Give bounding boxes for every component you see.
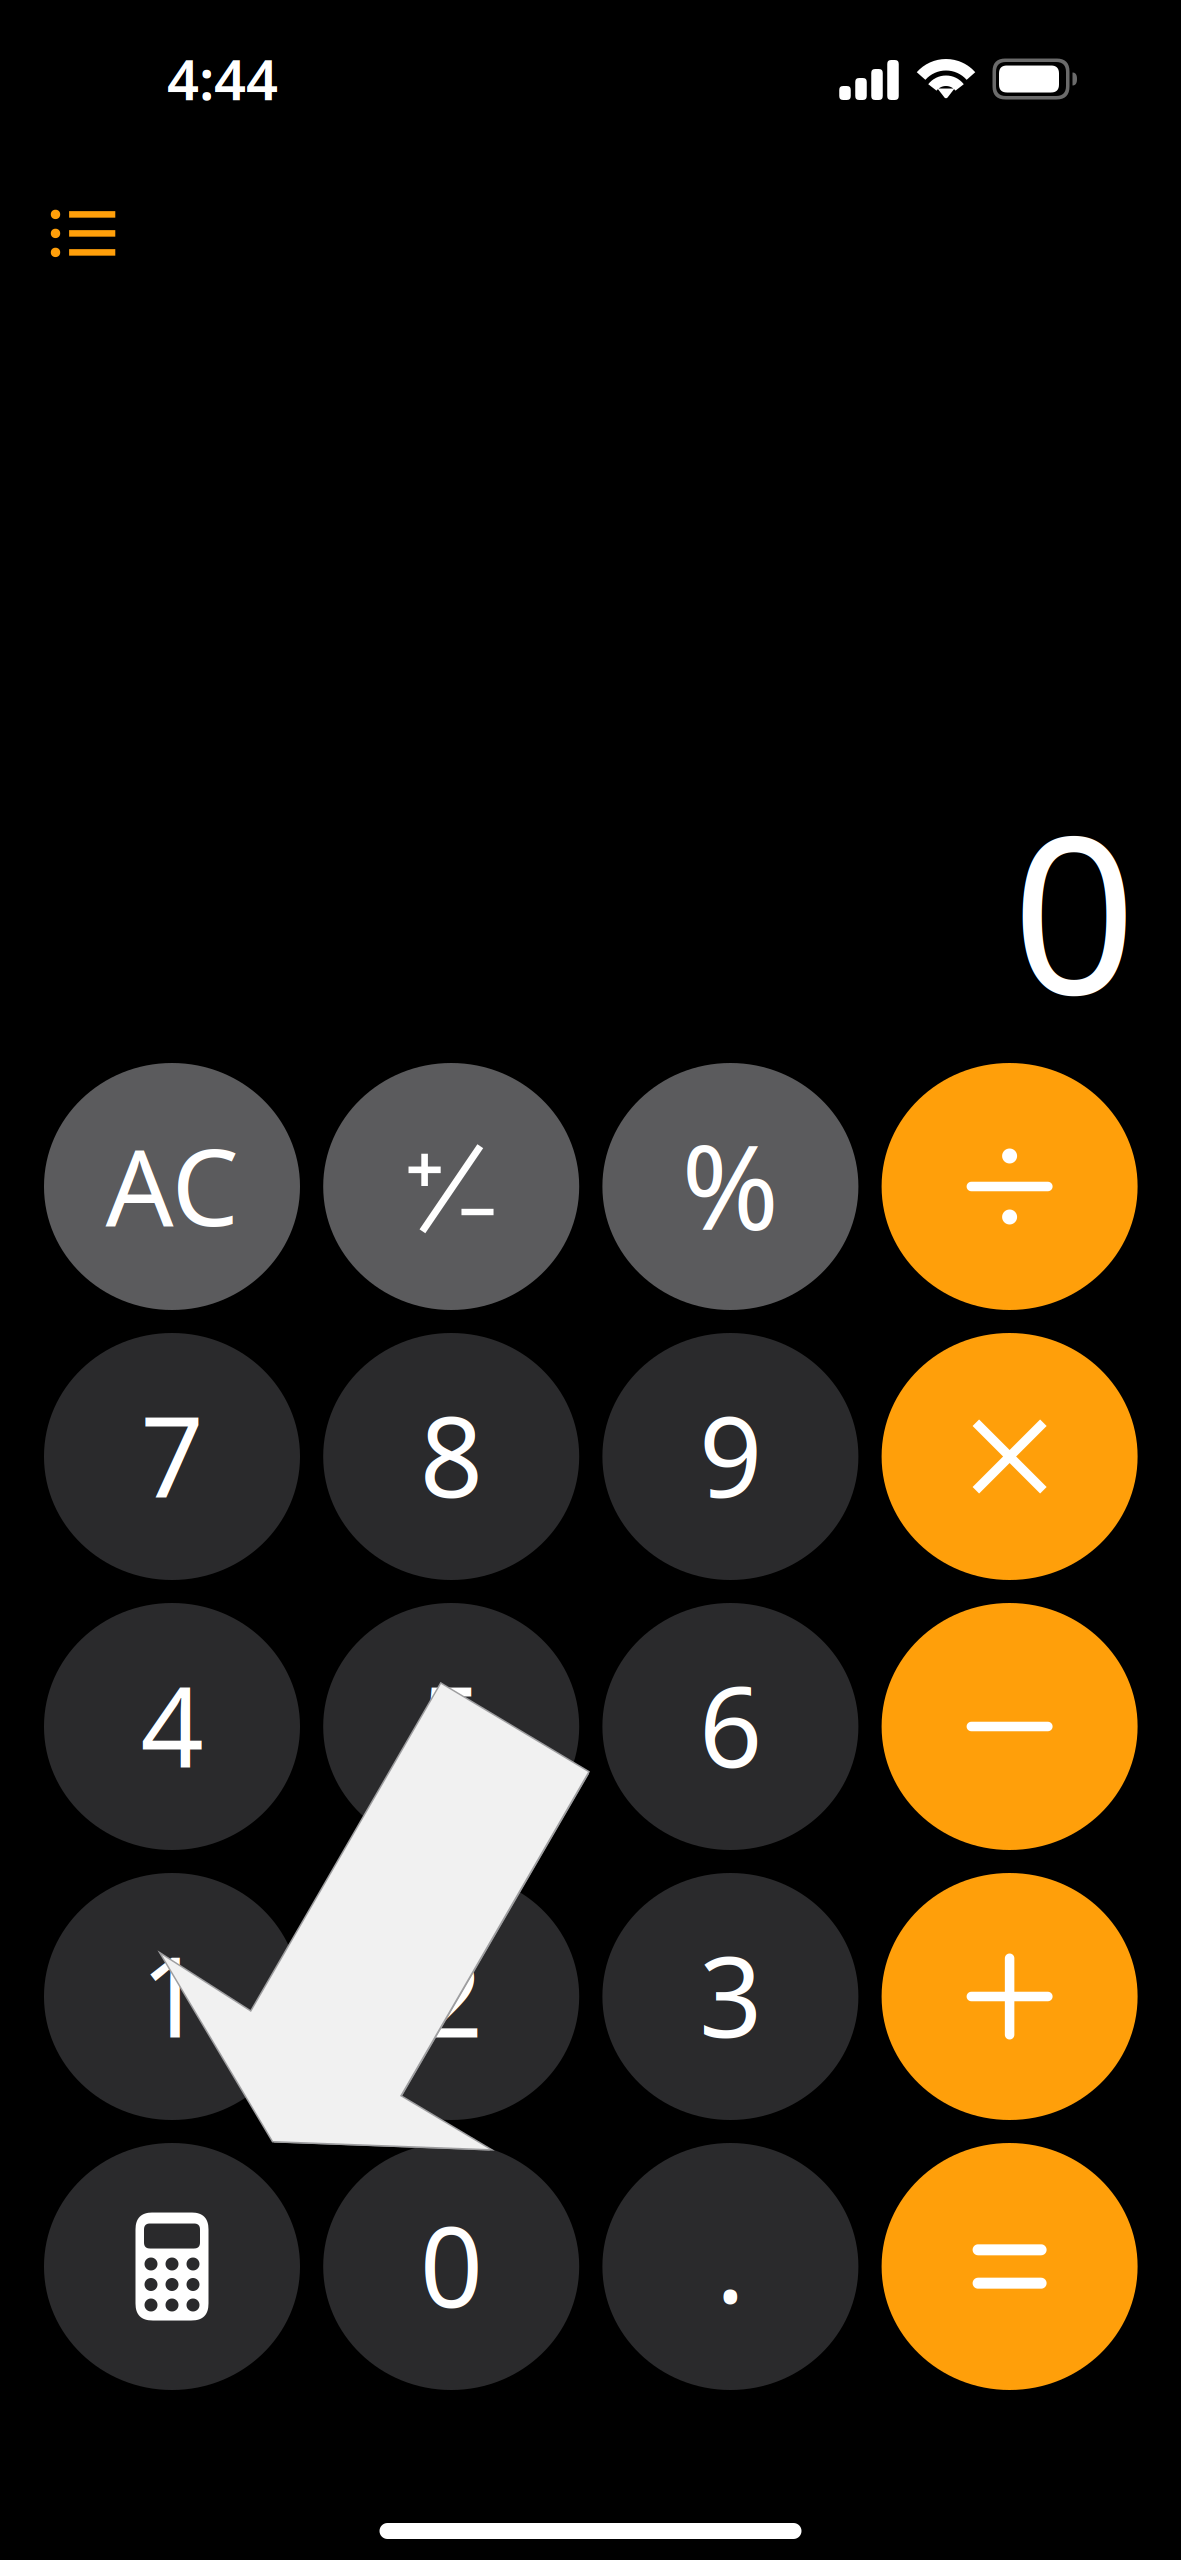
staticText: 1 xyxy=(140,1921,203,2068)
button[interactable]: Multiply xyxy=(882,1333,1138,1580)
button[interactable]: 2 xyxy=(323,1873,579,2120)
button[interactable]: Divide xyxy=(882,1063,1138,1310)
button[interactable]: Plus minus xyxy=(323,1063,579,1310)
button[interactable]: Plus xyxy=(882,1873,1138,2120)
button[interactable]: Minus xyxy=(882,1603,1138,1850)
staticText: AC xyxy=(105,1114,238,1255)
button[interactable]: % xyxy=(602,1063,858,1310)
button[interactable]: 5 xyxy=(323,1603,579,1850)
button[interactable]: Calculator xyxy=(44,2143,300,2390)
staticText: 4 xyxy=(140,1651,203,1798)
staticText: 4:44 xyxy=(167,41,278,116)
button[interactable]: 3 xyxy=(602,1873,858,2120)
staticText: 0 xyxy=(420,2191,483,2338)
staticText: 6 xyxy=(699,1651,762,1798)
button[interactable]: 9 xyxy=(602,1333,858,1580)
staticText: . xyxy=(715,2186,745,2333)
button[interactable]: 0 xyxy=(323,2143,579,2390)
button[interactable]: 6 xyxy=(602,1603,858,1850)
staticText: 3 xyxy=(699,1921,762,2068)
button[interactable]: . xyxy=(602,2143,858,2390)
staticText: 0 xyxy=(1012,766,1136,1054)
staticText: 8 xyxy=(420,1381,483,1528)
button[interactable]: 8 xyxy=(323,1333,579,1580)
staticText: 9 xyxy=(699,1381,762,1528)
staticText: % xyxy=(681,1107,779,1262)
button[interactable]: 4 xyxy=(44,1603,300,1850)
button[interactable]: Equals xyxy=(882,2143,1138,2390)
button[interactable]: 7 xyxy=(44,1333,300,1580)
button[interactable]: 1 xyxy=(44,1873,300,2120)
staticText: 5 xyxy=(420,1651,483,1798)
staticText: 2 xyxy=(420,1921,483,2068)
button[interactable]: AC xyxy=(44,1063,300,1310)
button[interactable]: History xyxy=(23,180,147,288)
staticText: 7 xyxy=(140,1381,203,1528)
